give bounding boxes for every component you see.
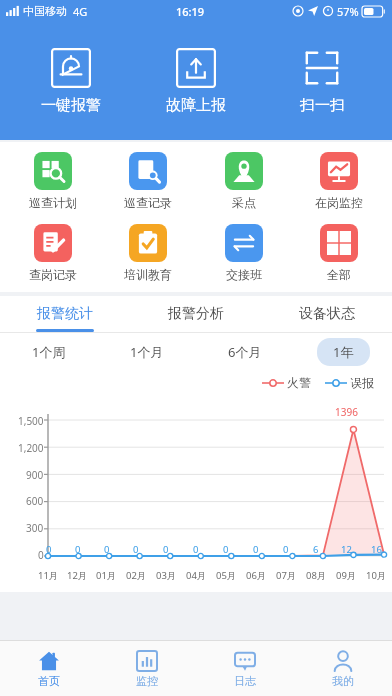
staticText: 培训教育 (124, 267, 172, 282)
button[interactable]: 误报 (325, 375, 374, 390)
staticText: 监控 (136, 674, 158, 688)
staticText: 05月 (216, 569, 237, 582)
staticText: 0 (163, 543, 169, 556)
staticText: 故障上报 (166, 96, 226, 115)
staticText: 在岗监控 (315, 195, 363, 210)
staticText: 900 (26, 468, 44, 482)
staticText: 查岗记录 (29, 267, 77, 282)
staticText: 0 (46, 543, 52, 556)
button[interactable]: 巡查记录 (105, 150, 191, 212)
staticText: 1个月 (130, 343, 164, 361)
staticText: 0 (193, 543, 199, 556)
staticText: 12月 (67, 569, 88, 582)
staticText: 01月 (96, 569, 117, 582)
staticText: 04月 (186, 569, 207, 582)
button[interactable]: 监控 (98, 641, 196, 696)
staticText: 0 (283, 543, 289, 556)
staticText: 巡查记录 (124, 195, 172, 210)
staticText: 09月 (336, 569, 357, 582)
button[interactable]: 火警 (262, 375, 311, 390)
staticText: 0 (75, 543, 81, 556)
staticText: 1396 (335, 405, 358, 419)
button[interactable]: 设备状态 (261, 296, 392, 332)
staticText: 日志 (234, 674, 256, 688)
button[interactable]: 巡查计划 (10, 150, 96, 212)
button[interactable]: 1个周 (16, 338, 82, 366)
staticText: 火警 (287, 375, 311, 390)
staticText: 10月 (366, 569, 387, 582)
staticText: 中国移动 (23, 4, 67, 18)
staticText: 全部 (327, 267, 351, 282)
staticText: 07月 (276, 569, 297, 582)
staticText: 1年 (333, 343, 354, 361)
staticText: 1,500 (18, 414, 44, 428)
staticText: 巡查计划 (29, 195, 77, 210)
staticText: 57% (337, 4, 359, 19)
button[interactable]: 查岗记录 (10, 222, 96, 284)
button[interactable]: 一键报警 (16, 44, 126, 119)
button[interactable]: 报警分析 (130, 296, 261, 332)
staticText: 0 (133, 543, 139, 556)
button[interactable]: 日志 (196, 641, 294, 696)
staticText: 0 (104, 543, 110, 556)
staticText: 0 (223, 543, 229, 556)
staticText: 报警统计 (37, 305, 93, 323)
button[interactable]: 全部 (296, 222, 382, 284)
staticText: 4G (73, 4, 88, 19)
staticText: 08月 (306, 569, 327, 582)
button[interactable]: 扫一扫 (267, 44, 377, 119)
staticText: 16:19 (176, 4, 205, 19)
staticText: 我的 (332, 674, 354, 688)
button[interactable]: 1个月 (114, 338, 180, 366)
staticText: 1个周 (32, 343, 66, 361)
staticText: 一键报警 (41, 96, 101, 115)
staticText: 12 (341, 543, 352, 556)
staticText: 设备状态 (299, 305, 355, 323)
staticText: 0 (38, 548, 44, 562)
staticText: 报警分析 (168, 305, 224, 323)
button[interactable]: 首页 (0, 641, 98, 696)
staticText: 误报 (350, 375, 374, 390)
button[interactable]: 故障上报 (141, 44, 251, 119)
staticText: 交接班 (226, 267, 262, 282)
staticText: 11月 (38, 569, 59, 582)
button[interactable]: 6个月 (212, 338, 278, 366)
staticText: 1,200 (18, 441, 44, 455)
staticText: 6个月 (228, 343, 262, 361)
button[interactable]: 培训教育 (105, 222, 191, 284)
staticText: 6 (313, 543, 319, 556)
button[interactable]: 1年 (317, 338, 370, 366)
staticText: 0 (253, 543, 259, 556)
staticText: 扫一扫 (300, 96, 345, 115)
staticText: 03月 (156, 569, 177, 582)
staticText: 02月 (126, 569, 147, 582)
button[interactable]: 交接班 (201, 222, 287, 284)
staticText: 300 (26, 521, 44, 535)
button[interactable]: 采点 (201, 150, 287, 212)
staticText: 采点 (232, 195, 256, 210)
button[interactable]: 我的 (294, 641, 392, 696)
staticText: 16 (371, 543, 382, 556)
staticText: 06月 (246, 569, 267, 582)
staticText: 600 (26, 494, 44, 508)
button[interactable]: 报警统计 (0, 296, 130, 332)
button[interactable]: 在岗监控 (296, 150, 382, 212)
staticText: 首页 (38, 674, 60, 688)
